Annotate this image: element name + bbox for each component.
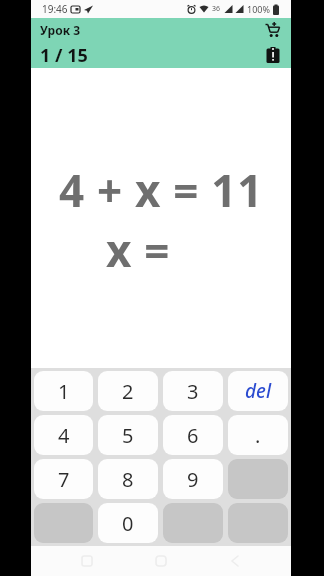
staticText: 1 — [58, 378, 70, 405]
staticText: 100% — [247, 3, 270, 15]
staticText: 4 — [58, 422, 70, 449]
button[interactable]: 9 — [163, 459, 223, 499]
button[interactable]: . — [228, 415, 288, 455]
button[interactable] — [75, 549, 99, 573]
staticText: . — [255, 422, 261, 449]
staticText: 6 — [187, 422, 199, 449]
staticText: 36 — [212, 4, 221, 14]
button[interactable] — [264, 46, 282, 64]
staticText: Урок 3 — [40, 22, 81, 38]
staticText: x = — [106, 220, 171, 280]
staticText: 3 — [187, 378, 199, 405]
button[interactable]: 3 — [163, 371, 223, 411]
button[interactable]: 8 — [98, 459, 158, 499]
staticText: 5 — [122, 422, 134, 449]
button[interactable]: 7 — [34, 459, 93, 499]
button[interactable] — [228, 459, 288, 499]
button[interactable] — [264, 21, 282, 39]
button[interactable] — [34, 503, 93, 543]
button[interactable]: 1 — [34, 371, 93, 411]
button[interactable]: 5 — [98, 415, 158, 455]
staticText: 9 — [187, 466, 199, 493]
staticText: 7 — [58, 466, 70, 493]
button[interactable] — [228, 503, 288, 543]
staticText: 19:46 — [42, 2, 68, 16]
button[interactable]: 2 — [98, 371, 158, 411]
button[interactable]: 4 — [34, 415, 93, 455]
button[interactable]: 0 — [98, 503, 158, 543]
staticText: 2 — [122, 378, 134, 405]
staticText: 8 — [122, 466, 134, 493]
button[interactable]: del — [228, 371, 288, 411]
button[interactable] — [163, 503, 223, 543]
staticText: 4 + x = 11 — [59, 160, 264, 220]
button[interactable] — [149, 549, 173, 573]
staticText: 0 — [122, 510, 134, 537]
staticText: del — [245, 378, 272, 404]
staticText: 1 / 15 — [40, 43, 88, 68]
button[interactable]: 6 — [163, 415, 223, 455]
